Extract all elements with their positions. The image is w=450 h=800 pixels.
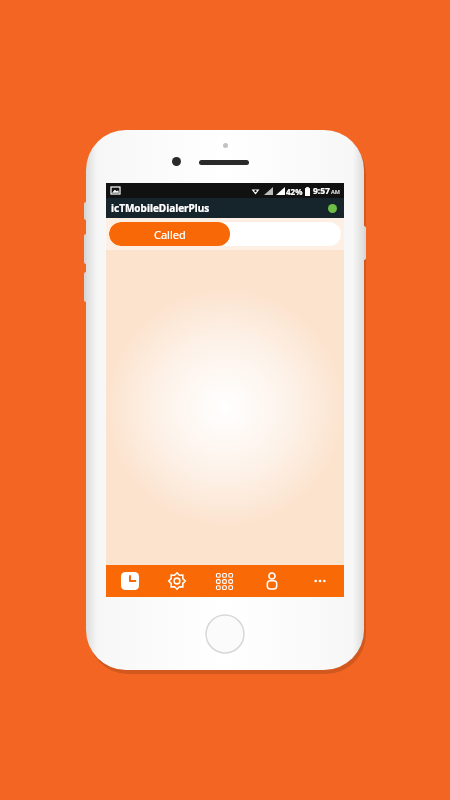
button[interactable]: Contacts	[248, 565, 296, 597]
staticText: Called	[154, 227, 186, 242]
staticText: AM	[331, 188, 340, 195]
button[interactable]: Called	[109, 222, 230, 246]
button[interactable]: Settings	[153, 565, 200, 597]
button[interactable]	[230, 222, 341, 246]
button[interactable]: Dialpad	[200, 565, 248, 597]
staticText: 42%	[286, 186, 303, 197]
staticText: icTMobileDialerPlus	[111, 201, 210, 215]
button[interactable]: Recent calls	[106, 565, 153, 597]
button[interactable]: More options	[296, 565, 344, 597]
staticText: 9:57	[313, 185, 330, 197]
